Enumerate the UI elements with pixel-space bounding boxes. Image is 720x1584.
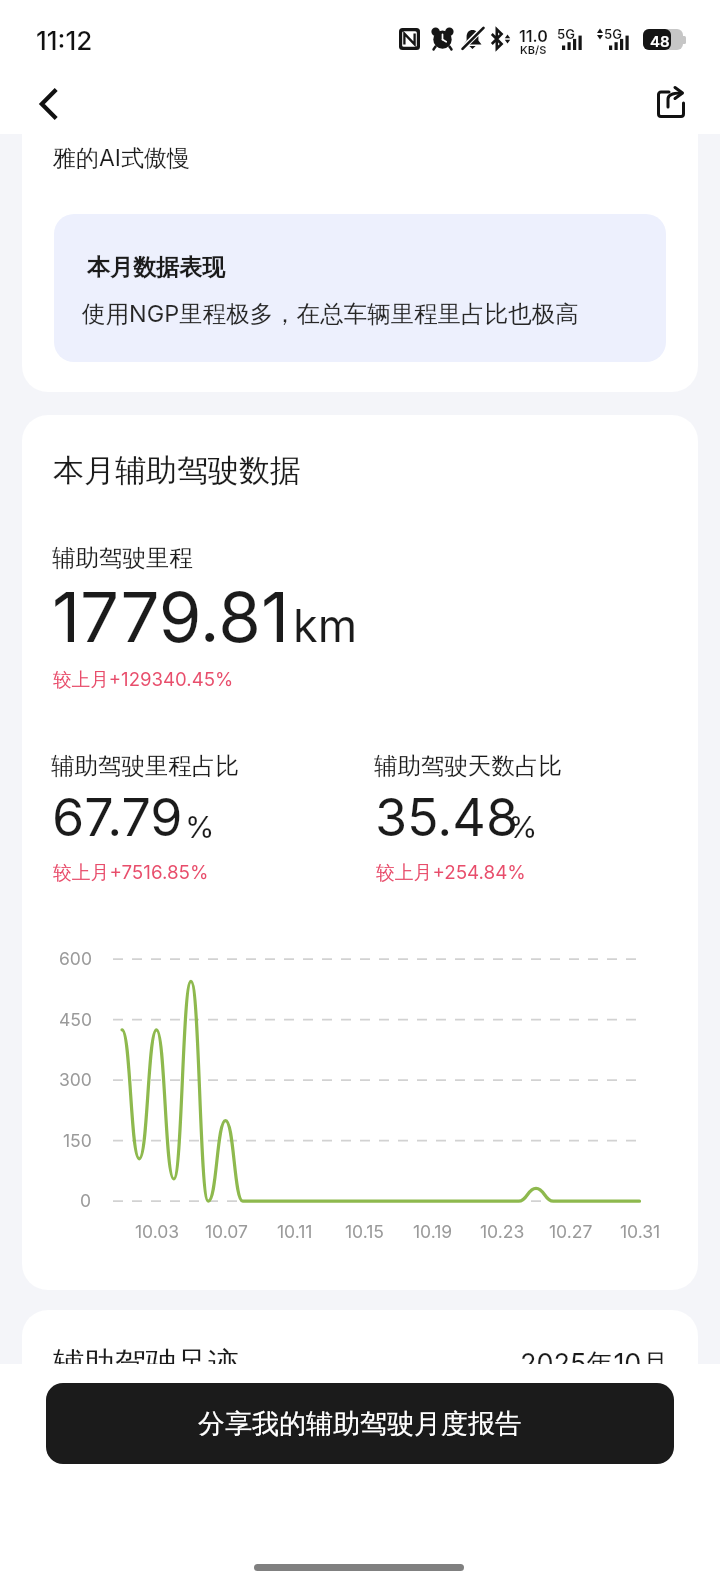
- staticText: 0: [80, 1190, 92, 1211]
- staticText: 600: [59, 948, 92, 969]
- staticText: 10.15: [345, 1221, 384, 1242]
- staticText: 5G: [604, 26, 622, 42]
- staticText: 10.23: [480, 1221, 525, 1242]
- staticText: 辅助驾驶天数占比: [374, 751, 562, 781]
- staticText: 辅助驾驶足迹: [53, 1344, 239, 1383]
- staticText: 较上月+129340.45%: [53, 668, 234, 692]
- staticText: 辅助驾驶里程占比: [51, 751, 239, 781]
- staticText: 11:12: [36, 25, 93, 56]
- staticText: 10.19: [413, 1221, 453, 1242]
- staticText: 10.07: [205, 1221, 248, 1242]
- staticText: 450: [59, 1009, 92, 1030]
- staticText: %: [508, 809, 538, 845]
- staticText: 10.31: [620, 1221, 661, 1242]
- staticText: 较上月+7516.85%: [53, 861, 209, 885]
- staticText: 1779.81: [52, 575, 289, 658]
- staticText: km: [293, 598, 358, 652]
- staticText: 10.11: [277, 1221, 313, 1242]
- staticText: 11.0: [519, 26, 548, 45]
- staticText: 48: [650, 32, 670, 50]
- staticText: 本月数据表现: [87, 253, 225, 282]
- staticText: 雅的AI式傲慢: [53, 144, 191, 173]
- staticText: 2025年10月: [520, 1347, 669, 1381]
- staticText: %: [185, 809, 215, 845]
- staticText: 67.79: [52, 786, 183, 849]
- staticText: 300: [59, 1069, 92, 1090]
- button[interactable]: Back: [20, 75, 78, 133]
- staticText: 较上月+254.84%: [376, 861, 526, 885]
- staticText: 10.27: [549, 1221, 593, 1242]
- staticText: 分享我的辅助驾驶月度报告: [198, 1407, 522, 1441]
- button[interactable]: 分享我的辅助驾驶月度报告: [46, 1383, 674, 1464]
- staticText: 35.48: [375, 786, 519, 849]
- staticText: 使用NGP里程极多，在总车辆里程里占比也极高: [82, 299, 579, 329]
- staticText: 10.03: [135, 1221, 180, 1242]
- staticText: 辅助驾驶里程: [52, 543, 193, 573]
- staticText: 5G: [557, 26, 575, 42]
- staticText: KB/S: [520, 43, 547, 56]
- staticText: 本月辅助驾驶数据: [53, 451, 301, 490]
- button[interactable]: Share: [642, 75, 700, 133]
- staticText: 150: [63, 1130, 92, 1151]
